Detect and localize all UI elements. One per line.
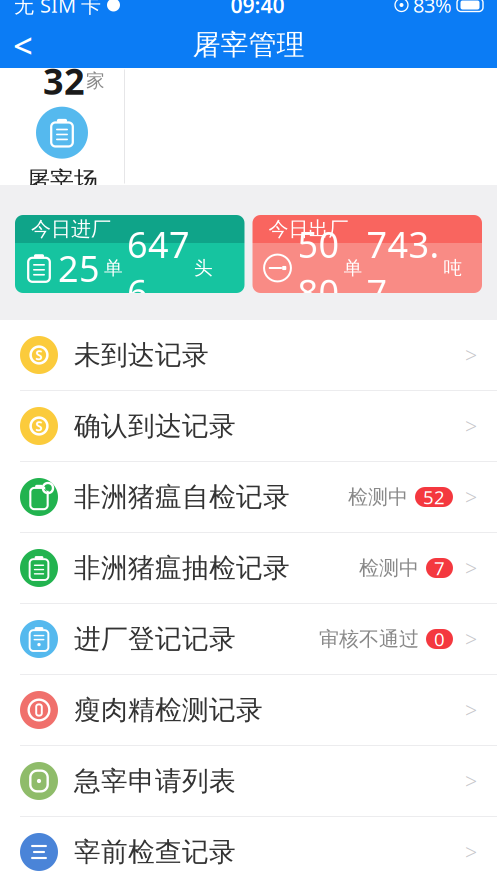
button[interactable]: 非洲猪瘟自检记录 (0, 462, 497, 533)
staticText: > (465, 696, 477, 724)
staticText: < (13, 22, 33, 68)
button[interactable]: 宰前检查记录 (0, 817, 497, 883)
staticText: 今日出厂 (268, 217, 348, 241)
staticText: S (35, 417, 42, 435)
staticText: 进厂登记记录 (74, 623, 236, 655)
staticText: 无 SIM 卡 (14, 0, 101, 18)
staticText: > (465, 412, 477, 440)
staticText: 5080 (297, 220, 339, 316)
staticText: 审核不通过 (319, 627, 419, 651)
staticText: 头 (194, 256, 213, 279)
staticText: 今日进厂 (31, 217, 111, 241)
staticText: 非洲猪瘟抽检记录 (74, 552, 290, 584)
staticText: > (465, 483, 477, 511)
button[interactable]: 进厂登记记录 (0, 604, 497, 675)
staticText: 家 (86, 69, 105, 92)
staticText: 52 (423, 485, 445, 509)
staticText: 未到达记录 (74, 339, 209, 371)
staticText: 单 (343, 256, 362, 279)
staticText: 瘦肉精检测记录 (74, 694, 263, 726)
staticText: 急宰申请列表 (74, 765, 236, 797)
button[interactable]: 32 (0, 68, 124, 185)
button[interactable]: S (0, 391, 497, 462)
staticText: > (465, 625, 477, 653)
staticText: 743.7 (366, 220, 439, 316)
button[interactable]: 返回 (0, 22, 46, 68)
button[interactable]: 非洲猪瘟抽检记录 (0, 533, 497, 604)
staticText: > (465, 838, 477, 866)
staticText: 6476 (127, 220, 190, 316)
staticText: 83% (413, 0, 452, 18)
staticText: 检测中 (359, 556, 419, 580)
staticText: 32 (43, 57, 85, 105)
staticText: 宰前检查记录 (74, 836, 236, 868)
staticText: > (465, 767, 477, 795)
staticText: 屠宰场 (26, 166, 98, 195)
staticText: S (35, 346, 42, 364)
staticText: > (465, 554, 477, 582)
button[interactable]: 瘦肉精检测记录 (0, 675, 497, 746)
staticText: 吨 (443, 256, 462, 279)
staticText: 检测中 (348, 485, 408, 509)
button[interactable]: 今日出厂 (252, 215, 482, 293)
staticText: 0 (434, 627, 445, 651)
button[interactable]: 急宰申请列表 (0, 746, 497, 817)
staticText: > (465, 341, 477, 369)
staticText: 单 (104, 256, 123, 279)
button[interactable]: 今日进厂 (15, 215, 244, 293)
staticText: 非洲猪瘟自检记录 (74, 481, 290, 513)
staticText: 确认到达记录 (74, 410, 236, 442)
staticText: 7 (434, 556, 445, 580)
staticText: 09:40 (230, 0, 284, 19)
staticText: 屠宰管理 (192, 28, 304, 62)
staticText: 25 (58, 244, 100, 292)
button[interactable]: S (0, 320, 497, 391)
